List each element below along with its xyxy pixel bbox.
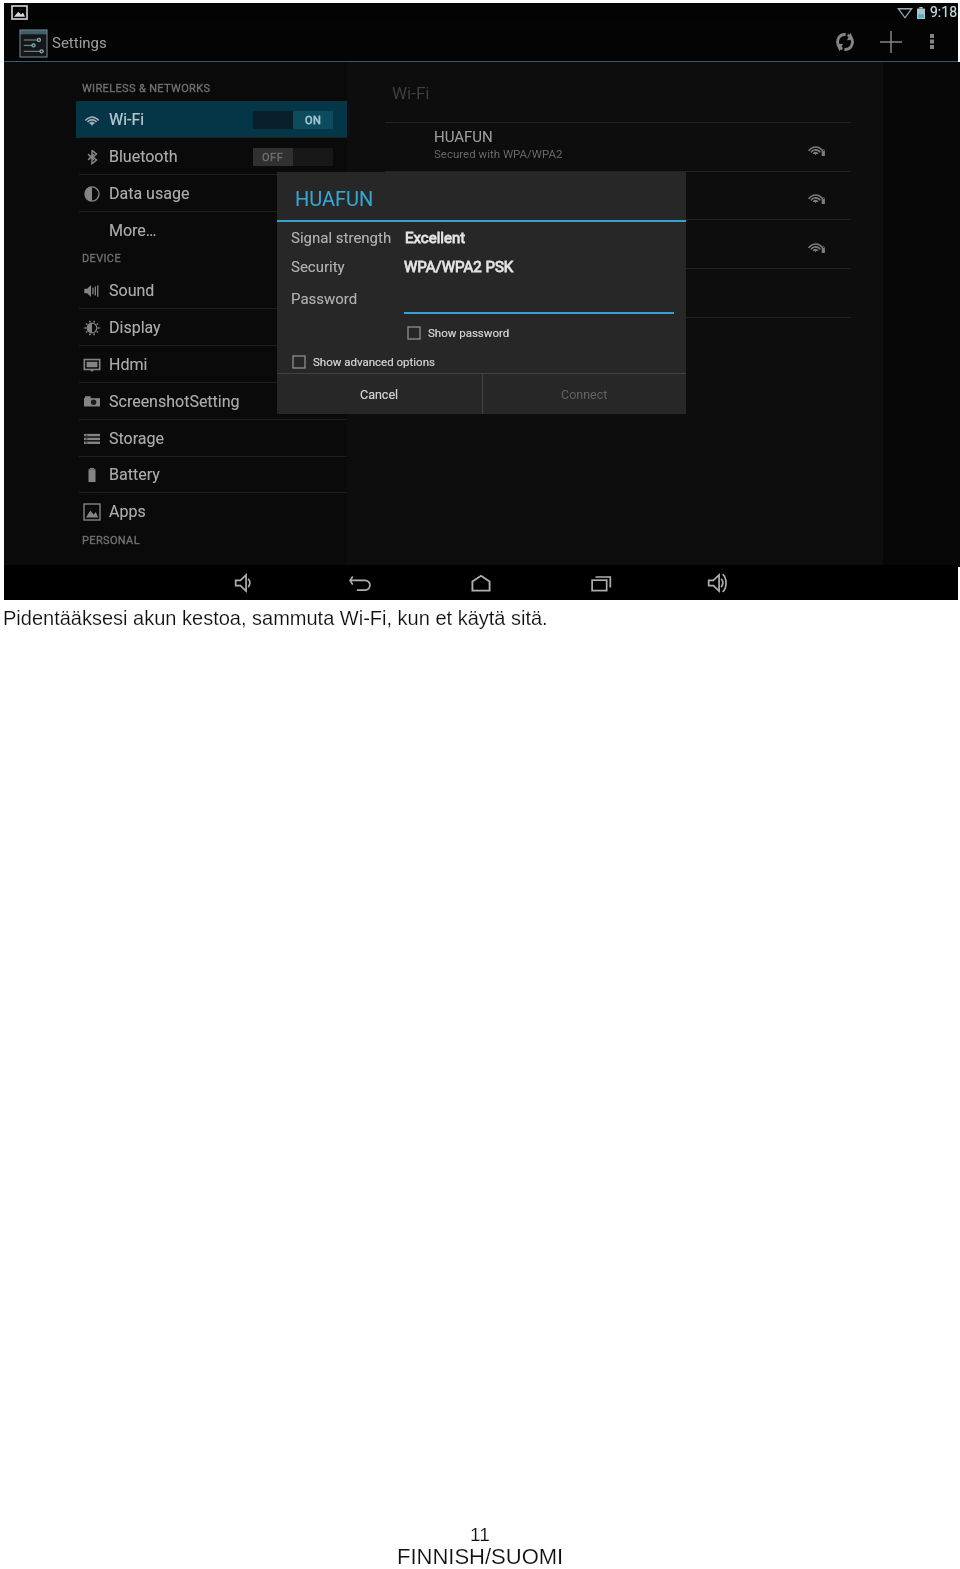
button[interactable]: Hdmi <box>76 346 347 383</box>
button[interactable]: Cancel <box>277 374 482 414</box>
staticText: Show password <box>428 326 510 339</box>
button[interactable]: More… <box>76 212 347 249</box>
button[interactable]: Add network <box>868 22 914 61</box>
staticText: Apps <box>109 502 146 521</box>
staticText: Settings <box>52 34 107 52</box>
button[interactable]: Location services <box>76 553 347 567</box>
button[interactable]: Home <box>462 565 500 600</box>
button[interactable]: Sound <box>76 272 347 309</box>
staticText: Wi-Fi <box>392 83 430 103</box>
button[interactable]: Connect <box>483 374 686 414</box>
other: Secured network <box>808 239 826 253</box>
staticText: Bluetooth <box>109 147 178 166</box>
staticText: OFF <box>262 151 284 164</box>
button[interactable]: Apps <box>76 493 347 530</box>
button[interactable]: Turn Wi-Fi off <box>253 111 333 129</box>
staticText: Hdmi <box>109 355 148 374</box>
button[interactable]: ScreenshotSetting <box>76 383 347 420</box>
button[interactable]: Battery <box>76 456 347 493</box>
staticText: Location services <box>109 562 234 567</box>
staticText: Battery <box>109 465 160 484</box>
staticText: Sound <box>109 281 155 300</box>
button[interactable]: Turn Bluetooth on <box>253 148 333 166</box>
button[interactable]: Volume down <box>225 565 263 600</box>
button[interactable]: Volume up <box>698 565 736 600</box>
button[interactable]: Back <box>341 565 379 600</box>
staticText: FINNISH/SUOMI <box>397 1544 564 1569</box>
staticText: ScreenshotSetting <box>109 392 240 411</box>
button[interactable]: HUAFUN <box>347 123 883 171</box>
staticText: Display <box>109 318 161 337</box>
button[interactable]: Scan <box>822 22 868 61</box>
other: Secured network <box>808 190 826 204</box>
staticText: Excellent <box>405 229 466 247</box>
staticText: HUAFUN <box>434 128 493 146</box>
button[interactable]: Show advanced options <box>293 355 435 368</box>
staticText: More… <box>109 221 157 240</box>
button[interactable]: Show password <box>408 326 510 339</box>
staticText: Secured with WPA/WPA2 <box>434 147 563 160</box>
button[interactable]: Bluetooth <box>76 138 347 175</box>
staticText: Signal strength <box>291 229 392 247</box>
staticText: Data usage <box>109 184 190 203</box>
staticText: Show advanced options <box>313 355 435 368</box>
staticText: Storage <box>109 429 164 448</box>
other: Secured network <box>808 142 826 156</box>
staticText: Connect <box>561 387 608 402</box>
button[interactable]: Settings app <box>17 26 49 60</box>
staticText: HUAFUN <box>295 187 374 210</box>
button[interactable]: Wi-Fi <box>76 101 347 138</box>
button[interactable]: More options <box>914 22 950 61</box>
staticText: Wi-Fi <box>109 110 145 129</box>
button[interactable]: Storage <box>76 420 347 457</box>
staticText: Security <box>291 258 345 276</box>
button[interactable]: Password field <box>404 290 674 314</box>
button[interactable]: Recent apps <box>583 565 621 600</box>
staticText: Cancel <box>360 387 399 402</box>
staticText: PERSONAL <box>82 534 140 547</box>
staticText: ON <box>305 114 322 127</box>
button[interactable]: Display <box>76 309 347 346</box>
staticText: 11 <box>470 1524 490 1545</box>
staticText: Password <box>291 290 358 308</box>
staticText: 9:18 <box>930 4 957 20</box>
staticText: WIRELESS & NETWORKS <box>82 82 211 95</box>
staticText: Pidentääksesi akun kestoa, sammuta Wi-Fi… <box>3 607 548 629</box>
button[interactable]: Data usage <box>76 175 347 212</box>
staticText: DEVICE <box>82 252 121 265</box>
staticText: WPA/WPA2 PSK <box>404 258 514 276</box>
